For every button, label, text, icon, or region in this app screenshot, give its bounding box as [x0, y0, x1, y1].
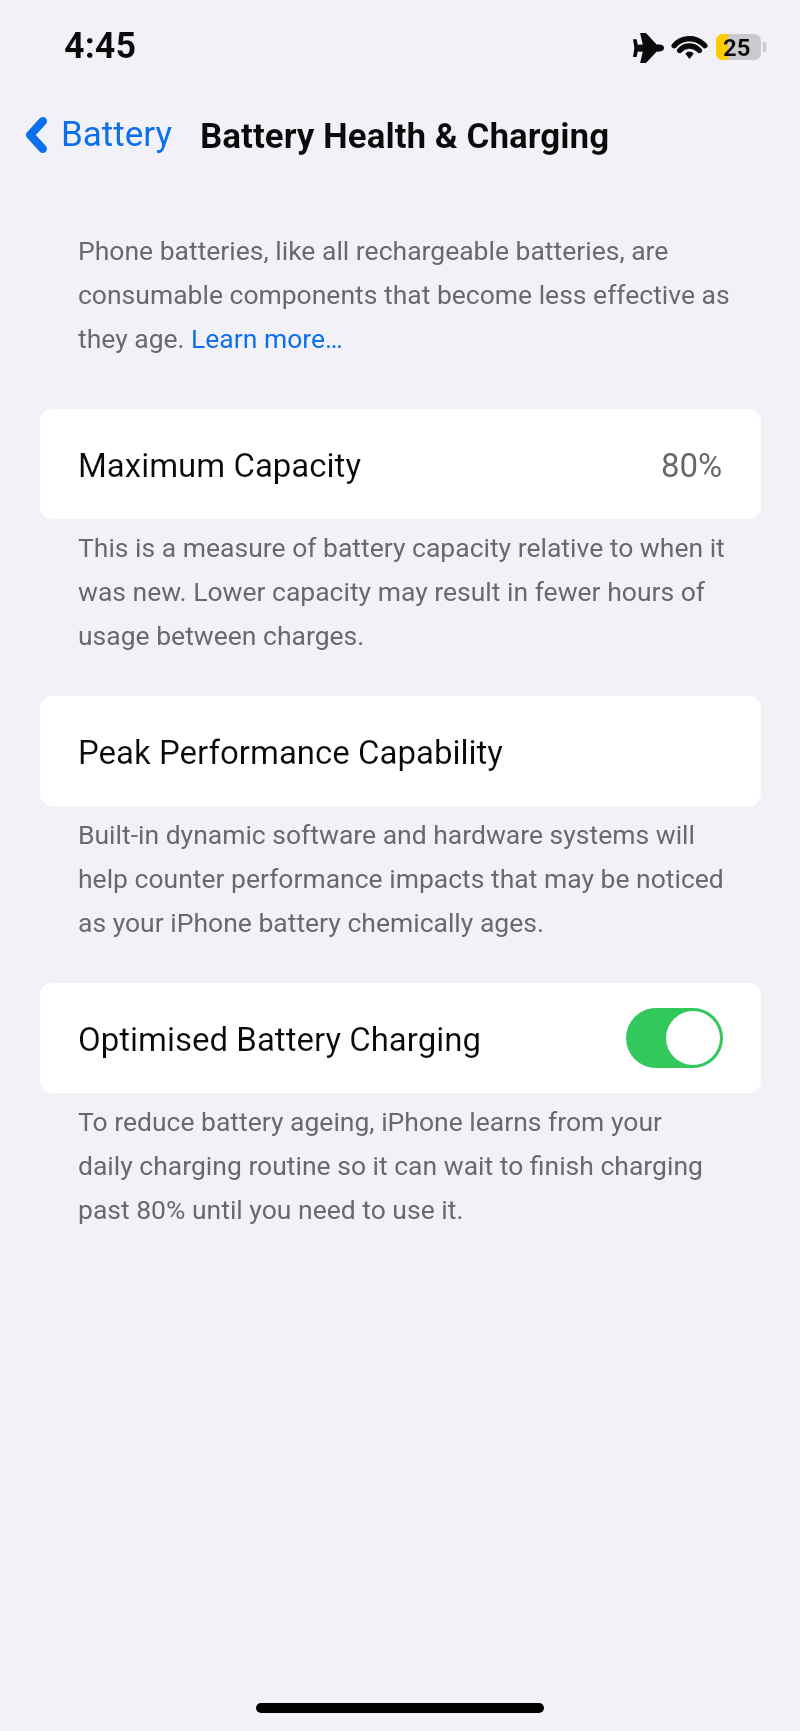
staticText: Battery Health & Charging — [200, 116, 610, 157]
button[interactable]: Back to Battery — [22, 114, 173, 155]
button[interactable]: Peak Performance Capability — [40, 696, 761, 806]
staticText: Built-in dynamic software and hardware s… — [78, 809, 724, 941]
other: Battery 25 percent — [716, 34, 768, 60]
staticText: 4:45 — [64, 25, 137, 67]
button[interactable]: Optimised Battery Charging — [40, 983, 761, 1093]
staticText: Battery — [61, 114, 173, 155]
button[interactable]: Learn more… — [191, 313, 343, 357]
staticText: 25 — [723, 34, 751, 60]
staticText: 80% — [661, 446, 723, 485]
other: Aeroplane mode — [633, 33, 664, 63]
staticText: This is a measure of battery capacity re… — [78, 522, 725, 654]
other: Wi-Fi — [673, 34, 706, 59]
staticText: Phone batteries, like all rechargeable b… — [78, 225, 730, 357]
staticText: Optimised Battery Charging — [78, 1020, 482, 1059]
other: Back to Battery — [26, 117, 47, 153]
button[interactable]: Maximum Capacity — [40, 409, 761, 519]
button[interactable]: Optimised Battery Charging, on — [626, 1008, 723, 1068]
staticText: Learn more… — [191, 313, 343, 357]
staticText: Peak Performance Capability — [78, 733, 503, 772]
staticText: Maximum Capacity — [78, 446, 362, 485]
staticText: To reduce battery ageing, iPhone learns … — [78, 1096, 703, 1228]
